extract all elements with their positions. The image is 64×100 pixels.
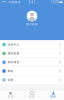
staticText: ••••◦ 中国移动 bbox=[1, 0, 20, 4]
staticText: 用户名称 bbox=[26, 23, 38, 26]
staticText: 发现 bbox=[29, 95, 35, 98]
button[interactable]: 我的 bbox=[43, 90, 64, 100]
button[interactable]: 消息中心 bbox=[0, 40, 64, 49]
staticText: 我的收藏 bbox=[7, 52, 19, 55]
button[interactable]: 我的收藏 bbox=[0, 49, 64, 58]
staticText: 100% bbox=[51, 0, 59, 4]
staticText: 设置 bbox=[7, 78, 13, 82]
button[interactable]: 发现 bbox=[21, 90, 43, 100]
staticText: 9:41 bbox=[28, 0, 35, 4]
button[interactable]: 帮助 bbox=[0, 67, 64, 76]
button[interactable]: 首页 bbox=[0, 90, 21, 100]
button[interactable]: 设置 bbox=[0, 76, 64, 84]
staticText: 消息中心 bbox=[7, 43, 19, 46]
staticText: 帮助 bbox=[7, 69, 13, 73]
staticText: 首页 bbox=[8, 95, 14, 98]
button[interactable]: 我的钱包 bbox=[0, 58, 64, 67]
staticText: 我的 bbox=[50, 95, 56, 98]
staticText: 我的钱包 bbox=[7, 61, 19, 64]
